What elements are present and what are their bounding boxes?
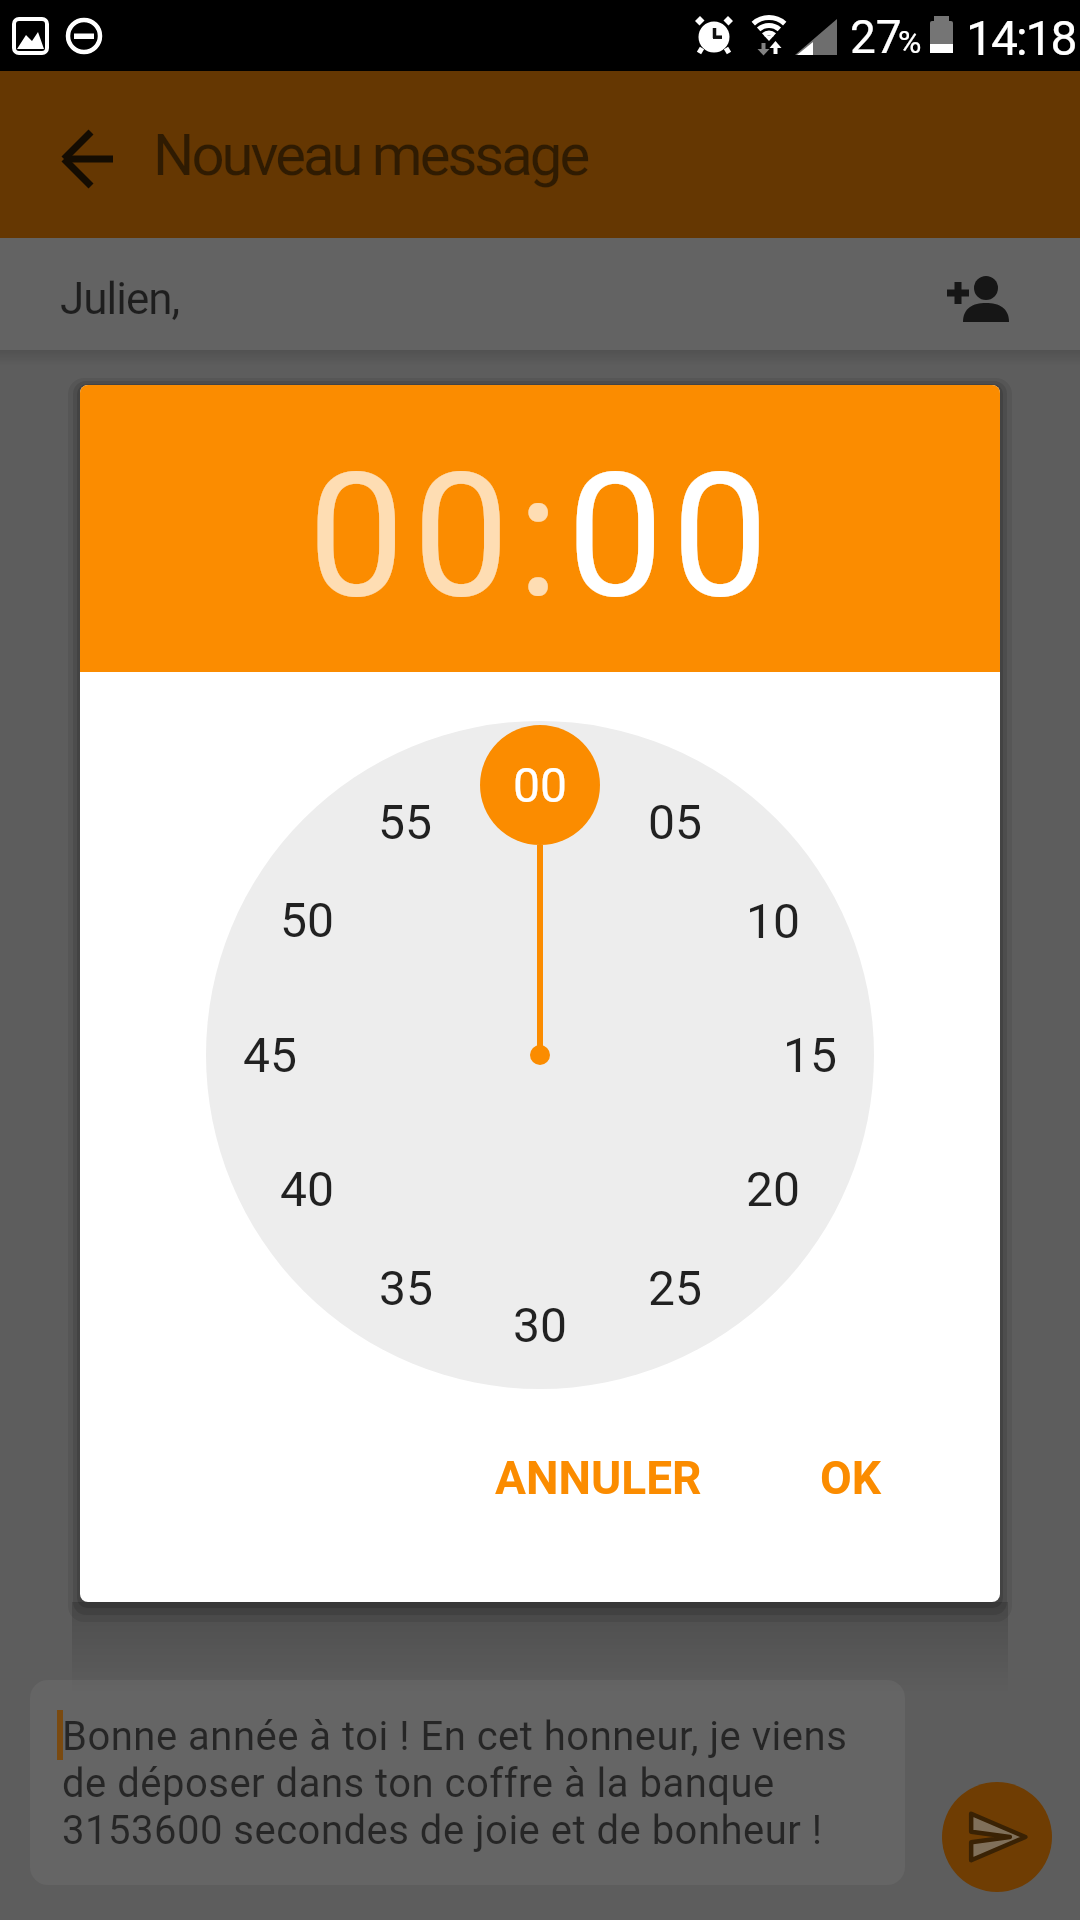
staticText: 45 [243, 1027, 297, 1083]
staticText: 05 [648, 794, 702, 850]
staticText: 00 [513, 757, 567, 813]
staticText: 00:00 [308, 435, 777, 637]
button[interactable]: OK [780, 1422, 920, 1534]
staticText: 30 [513, 1297, 567, 1353]
staticText: 35 [379, 1260, 433, 1316]
staticText: 15 [783, 1027, 837, 1083]
staticText: Bonne année à toi ! En cet honneur, je v… [62, 1713, 848, 1854]
staticText: Julien, [60, 273, 180, 325]
button[interactable]: ANNULER [483, 1422, 713, 1534]
staticText: % [898, 23, 922, 61]
staticText: 27 [850, 10, 902, 64]
staticText: 55 [378, 794, 432, 850]
staticText: 20 [746, 1161, 800, 1217]
button[interactable]: Bonne année à toi ! En cet honneur, je v… [30, 1680, 905, 1885]
staticText: 50 [280, 892, 334, 948]
button[interactable] [40, 111, 136, 207]
staticText: 10 [746, 893, 800, 949]
button[interactable] [938, 268, 1018, 332]
button[interactable] [942, 1782, 1052, 1892]
staticText: 25 [648, 1260, 702, 1316]
staticText: Nouveau message [153, 121, 588, 189]
staticText: 14:18 [966, 10, 1076, 66]
staticText: 40 [280, 1161, 334, 1217]
staticText: OK [820, 1451, 881, 1505]
staticText: ANNULER [495, 1451, 702, 1505]
